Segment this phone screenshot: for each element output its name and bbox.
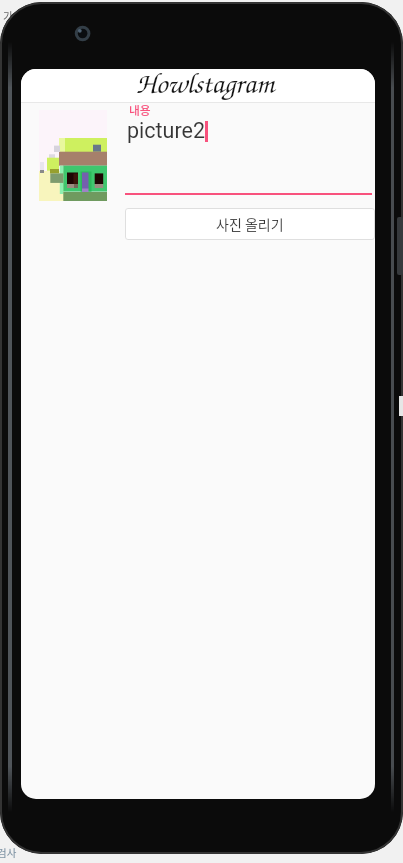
button[interactable]: 내용 [125, 103, 373, 196]
staticText: 검사 [0, 845, 17, 860]
button[interactable] [39, 110, 107, 201]
button[interactable]: 사진 올리기 [125, 208, 375, 240]
staticText: 사진 올리기 [216, 214, 284, 234]
staticText: Howlstagram [28, 69, 375, 101]
staticText: 가 [3, 8, 14, 24]
staticText: 내용 [129, 101, 151, 118]
staticText: picture2 [127, 118, 206, 143]
